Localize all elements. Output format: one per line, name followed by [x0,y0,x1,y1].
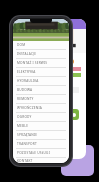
button[interactable]: SPRZĄTANIE [13,131,69,140]
staticText: MEBLE [17,124,29,128]
button[interactable]: WYKOŃCZENIA [13,104,69,113]
button[interactable]: ELEKTRYKA [13,68,69,77]
button[interactable]: POZOSTAŁE USŁUGI [13,149,69,158]
button[interactable]: KONTAKT [13,158,69,163]
button[interactable]: TRANSPORT [13,140,69,149]
button[interactable]: REMONTY [13,95,69,104]
button[interactable]: MONTAŻ I SERWIS [13,59,69,68]
staticText: SPRZĄTANIE [17,133,38,137]
staticText: HYDRAULIKA [17,79,39,83]
staticText: DOM [17,43,26,47]
button[interactable]: MEBLE [13,122,69,131]
button[interactable]: INSTALACJE [13,50,69,59]
staticText: REMONTY [17,97,34,101]
staticText: WYKOŃCZENIA [17,106,42,110]
button[interactable]: DOM [13,41,69,50]
staticText: BUDOWA [17,88,33,92]
staticText: MONTAŻ I SERWIS [17,61,48,65]
staticText: POZOSTAŁE USŁUGI [17,151,50,155]
staticText: OGRODY [17,115,32,119]
staticText: TRANSPORT [17,142,37,146]
button[interactable]: BUDOWA [13,86,69,95]
button[interactable]: OGRODY [13,113,69,122]
staticText: KONTAKT [17,159,33,163]
staticText: INSTALACJE [17,52,37,56]
button[interactable]: HYDRAULIKA [13,77,69,86]
button[interactable]: Chat [68,109,79,120]
staticText: ELEKTRYKA [17,70,36,74]
